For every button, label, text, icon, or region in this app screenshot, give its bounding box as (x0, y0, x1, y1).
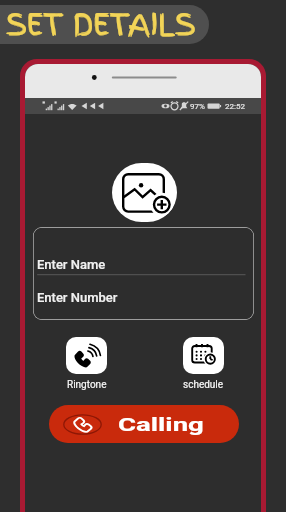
button[interactable]: Enter Number (33, 274, 254, 320)
button[interactable]: Calling (49, 405, 239, 443)
staticText: 97% (190, 102, 205, 111)
staticText: Enter Number (37, 290, 118, 305)
staticText: Enter Name (37, 257, 106, 272)
button[interactable]: SET DETAILS (0, 5, 209, 44)
staticText: 22:52 (225, 102, 245, 111)
staticText: SET DETAILS (6, 5, 196, 42)
staticText: Calling (118, 413, 205, 435)
staticText: Ringtone (67, 379, 107, 391)
button[interactable]: Enter Name (33, 227, 254, 274)
button[interactable]: Add photo (112, 163, 177, 222)
staticText: schedule (183, 379, 224, 391)
button[interactable]: schedule (183, 337, 224, 391)
button[interactable]: Ringtone (66, 337, 107, 391)
